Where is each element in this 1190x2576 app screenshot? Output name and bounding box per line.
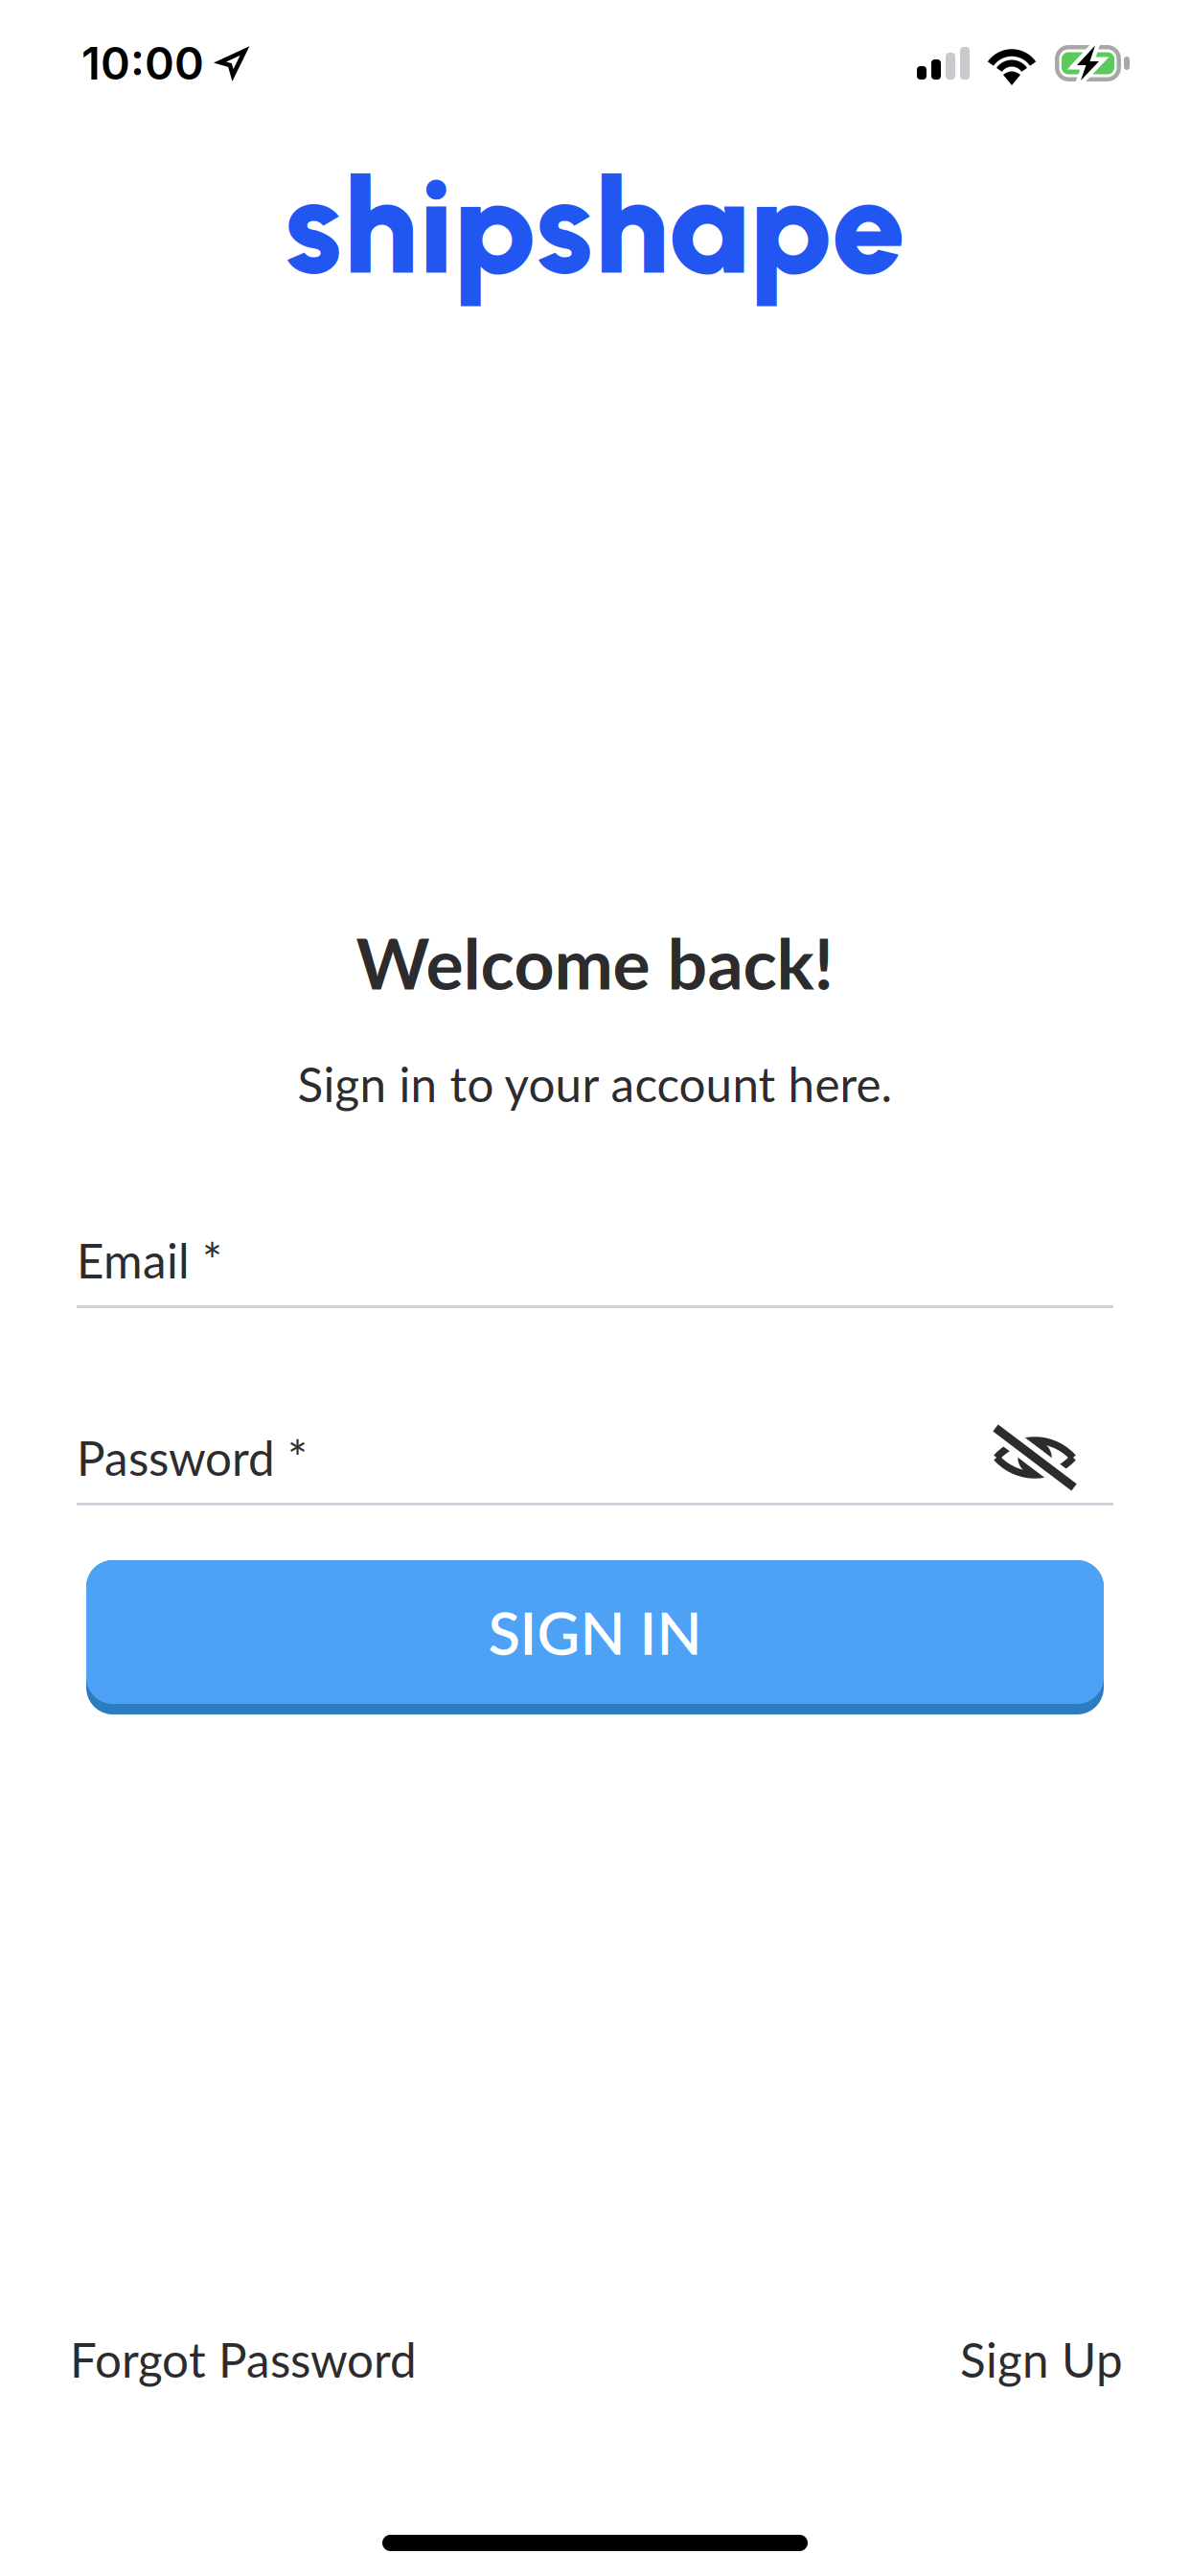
button[interactable]: Sign Up	[917, 2281, 1190, 2438]
staticText: shipshape	[284, 146, 906, 306]
staticText: Email *	[77, 1232, 222, 1289]
staticText: SIGN IN	[488, 1597, 702, 1667]
button[interactable]: SIGN IN	[86, 1560, 1104, 1714]
button[interactable]: Password *	[77, 1413, 949, 1503]
staticText: Password *	[77, 1429, 308, 1486]
staticText: 10:00	[81, 36, 204, 90]
staticText: Sign Up	[960, 2331, 1123, 2388]
staticText: Sign in to your account here.	[297, 1056, 892, 1112]
staticText: Forgot Password	[70, 2331, 417, 2388]
button[interactable]: Email *	[77, 1215, 949, 1305]
button[interactable]: Show password	[975, 1413, 1094, 1503]
staticText: Welcome back!	[356, 920, 834, 1004]
button[interactable]: Forgot Password	[15, 2281, 473, 2438]
